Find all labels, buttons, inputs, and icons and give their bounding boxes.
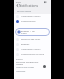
- button[interactable]: Notification history: [14, 14, 51, 19]
- staticText: On your phone: [17, 10, 32, 13]
- staticText: Bubbles: [21, 43, 30, 46]
- staticText: Conversations & more: [21, 53, 44, 56]
- staticText: Allow on lock screen: [16, 66, 34, 69]
- staticText: Privacy: [16, 58, 23, 61]
- button[interactable]: Notification history: [14, 47, 51, 52]
- button[interactable]: Notifications: [19, 3, 39, 8]
- staticText: Notification history: [21, 15, 41, 18]
- button[interactable]: Toggle: [43, 65, 46, 68]
- staticText: hidden: [16, 63, 24, 66]
- staticText: 9:30: [16, 0, 21, 3]
- staticText: Notifications: [19, 4, 38, 8]
- staticText: Bubbles • On: [21, 30, 35, 33]
- staticText: ▮▮: [44, 1, 47, 4]
- button[interactable]: Conversations & more: [14, 52, 51, 57]
- staticText: Advanced: [16, 70, 26, 73]
- button[interactable]: Conversations: [14, 19, 51, 24]
- staticText: Notification history: [21, 48, 41, 51]
- staticText: Sensitive notifications: [16, 61, 39, 64]
- button[interactable]: Back: [15, 3, 20, 8]
- button[interactable]: Device & app notif.: [14, 37, 51, 42]
- staticText: Conversations: [21, 20, 36, 23]
- button[interactable]: Bubbles: [14, 42, 51, 47]
- staticText: Device & app notif.: [21, 38, 41, 41]
- staticText: 5 apps: [21, 32, 27, 34]
- button[interactable]: Bubbles • On: [15, 28, 50, 36]
